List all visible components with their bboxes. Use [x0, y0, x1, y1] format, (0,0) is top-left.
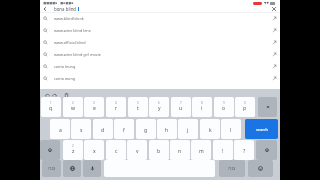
- button[interactable]: 2: [63, 140, 83, 160]
- staticText: ?123: [48, 166, 56, 171]
- staticText: 6: [158, 101, 160, 105]
- button[interactable]: s: [71, 119, 91, 139]
- staticText: 7: [180, 101, 182, 105]
- button[interactable]: www.wine blind girl movie: [40, 48, 280, 60]
- staticText: bona blind: [54, 6, 77, 12]
- button[interactable]: 9: [214, 97, 234, 117]
- staticText: conto wong: [54, 76, 76, 81]
- button[interactable]: 8: [192, 97, 212, 117]
- staticText: a: [59, 127, 62, 134]
- staticText: l: [230, 127, 232, 134]
- staticText: d: [101, 127, 105, 134]
- button[interactable]: k: [200, 119, 220, 139]
- staticText: www.wine blind girl movie: [54, 52, 101, 57]
- button[interactable]: 6: [149, 97, 169, 117]
- button[interactable]: Backspace: [258, 97, 277, 117]
- button[interactable]: b: [149, 140, 169, 160]
- button[interactable]: conto leung: [40, 60, 280, 72]
- staticText: g: [144, 127, 148, 134]
- button[interactable]: 7: [171, 97, 191, 117]
- button[interactable]: ?: [234, 140, 254, 160]
- button[interactable]: conto wong: [40, 72, 280, 84]
- button[interactable]: g: [136, 119, 156, 139]
- button[interactable]: v: [127, 140, 147, 160]
- staticText: k: [209, 127, 212, 134]
- staticText: i: [201, 105, 203, 112]
- staticText: 5: [137, 101, 139, 105]
- button[interactable]: Symbols: [219, 160, 245, 177]
- staticText: f: [123, 127, 125, 134]
- staticText: www.blind/vlook: [54, 16, 84, 21]
- staticText: p: [243, 105, 247, 112]
- button[interactable]: n: [170, 140, 190, 160]
- button[interactable]: a: [50, 119, 70, 139]
- staticText: h: [165, 127, 169, 134]
- button[interactable]: Clipboard: [63, 92, 69, 98]
- button[interactable]: www.official blind: [40, 36, 280, 48]
- button[interactable]: Shift: [40, 140, 60, 160]
- staticText: 0: [244, 101, 246, 105]
- button[interactable]: search: [245, 119, 278, 139]
- button[interactable]: 0: [235, 97, 255, 117]
- button[interactable]: Shift: [256, 140, 277, 160]
- button[interactable]: c: [106, 140, 126, 160]
- button[interactable]: Redo: [51, 92, 57, 98]
- button[interactable]: !: [213, 140, 233, 160]
- staticText: j: [187, 127, 189, 134]
- staticText: e: [93, 105, 96, 112]
- staticText: c: [115, 148, 118, 155]
- staticText: 4: [115, 101, 117, 105]
- staticText: o: [222, 105, 226, 112]
- staticText: www.official blind: [54, 40, 86, 45]
- staticText: n: [178, 148, 182, 155]
- button[interactable]: Undo: [44, 92, 50, 98]
- staticText: t: [137, 105, 139, 112]
- staticText: x: [93, 148, 96, 155]
- button[interactable]: l: [221, 119, 241, 139]
- staticText: 8: [201, 101, 203, 105]
- button[interactable]: Clear query: [270, 6, 278, 12]
- button[interactable]: Symbols: [42, 160, 61, 177]
- staticText: ?: [243, 148, 246, 155]
- staticText: s: [80, 127, 83, 134]
- staticText: 2: [72, 144, 74, 148]
- staticText: b: [157, 148, 161, 155]
- button[interactable]: h: [157, 119, 177, 139]
- staticText: 9: [223, 101, 225, 105]
- staticText: conto leung: [54, 64, 76, 69]
- button[interactable]: Language: [63, 160, 81, 177]
- button[interactable]: www.blind/vlook: [40, 12, 280, 24]
- button[interactable]: 4: [106, 97, 126, 117]
- button[interactable]: www.wine blind lene: [40, 24, 280, 36]
- button[interactable]: 3: [84, 97, 104, 117]
- button[interactable]: m: [191, 140, 211, 160]
- button[interactable]: Voice input: [83, 160, 101, 177]
- button[interactable]: 1: [41, 97, 61, 117]
- staticText: w: [71, 105, 75, 112]
- staticText: !: [222, 148, 224, 155]
- button[interactable]: j: [178, 119, 198, 139]
- button[interactable]: 2: [63, 97, 83, 117]
- staticText: 1: [50, 101, 52, 105]
- button[interactable]: Emoji: [248, 160, 273, 177]
- staticText: ■■■■▪: [43, 1, 58, 5]
- staticText: v: [136, 148, 139, 155]
- button[interactable]: 5: [128, 97, 148, 117]
- staticText: y: [158, 105, 161, 112]
- button[interactable]: d: [93, 119, 113, 139]
- staticText: 2: [72, 101, 74, 105]
- staticText: ?123: [228, 166, 236, 171]
- button[interactable]: f: [114, 119, 134, 139]
- staticText: z: [72, 148, 75, 155]
- staticText: www.wine blind lene: [54, 28, 91, 33]
- staticText: ▼▼: [264, 1, 269, 5]
- staticText: m: [199, 148, 204, 155]
- staticText: u: [179, 105, 183, 112]
- staticText: ■▪■■▪: [60, 1, 74, 5]
- staticText: q: [49, 105, 53, 112]
- staticText: 3: [93, 101, 95, 105]
- button[interactable]: x: [84, 140, 104, 160]
- staticText: search: [256, 127, 268, 132]
- button[interactable]: Back: [41, 6, 49, 12]
